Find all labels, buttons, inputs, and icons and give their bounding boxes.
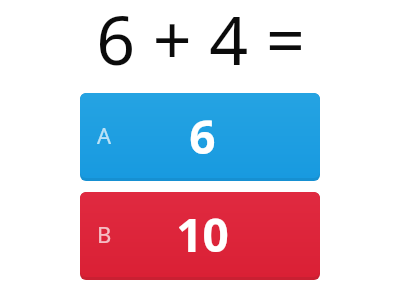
staticText: 10 [176, 203, 229, 266]
button[interactable]: A [80, 93, 320, 181]
button[interactable]: B [80, 192, 320, 280]
staticText: A [97, 120, 112, 150]
staticText: 6 + 4 = [96, 0, 305, 85]
staticText: 6 [189, 105, 216, 168]
staticText: B [97, 219, 112, 249]
